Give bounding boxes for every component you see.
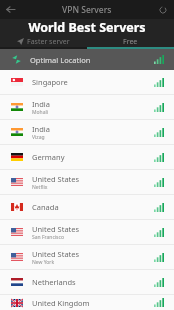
button[interactable]: Refresh [155, 2, 170, 17]
button[interactable]: Germany [0, 145, 174, 169]
staticText: Netherlands [32, 277, 76, 287]
button[interactable]: Singapore [0, 70, 174, 94]
staticText: United Kingdom [32, 298, 90, 308]
staticText: San Francisco [32, 234, 64, 241]
staticText: United States [32, 249, 80, 259]
staticText: Vizag [32, 134, 45, 141]
button[interactable]: Back [3, 2, 18, 17]
button[interactable]: United States [0, 220, 174, 244]
staticText: Netflix [32, 184, 48, 191]
button[interactable]: Netherlands [0, 270, 174, 294]
staticText: VPN Servers [62, 4, 112, 16]
staticText: Canada [32, 202, 59, 212]
button[interactable]: United States [0, 170, 174, 194]
button[interactable]: Free [87, 36, 174, 47]
staticText: United States [32, 174, 80, 184]
button[interactable]: United States [0, 245, 174, 269]
staticText: World Best Servers [28, 19, 146, 36]
button[interactable]: Canada [0, 195, 174, 219]
staticText: Mohali [32, 109, 49, 116]
staticText: Germany [32, 152, 65, 162]
button[interactable]: Faster server [0, 36, 87, 47]
staticText: Faster server [27, 37, 70, 47]
staticText: United States [32, 224, 80, 234]
staticText: India [32, 124, 50, 134]
staticText: India [32, 99, 50, 109]
button[interactable]: Optimal Location [0, 49, 174, 70]
staticText: Singapore [32, 77, 68, 87]
button[interactable]: United Kingdom [0, 295, 174, 310]
button[interactable]: India [0, 120, 174, 144]
staticText: Optimal Location [30, 55, 91, 65]
staticText: Free [123, 37, 138, 47]
staticText: New York [32, 259, 55, 266]
button[interactable]: India [0, 95, 174, 119]
